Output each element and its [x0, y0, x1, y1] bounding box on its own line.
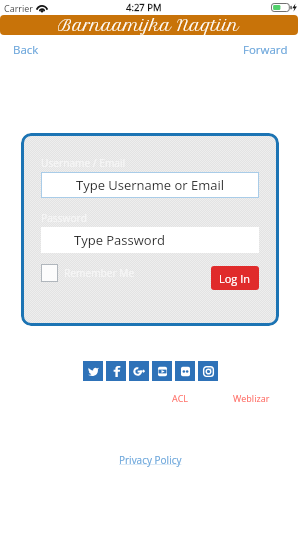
staticText: Type Password: [74, 231, 165, 249]
staticText: Remember Me: [64, 266, 135, 280]
button[interactable]: Back: [13, 42, 39, 56]
button[interactable]: YouTube: [152, 361, 172, 381]
button[interactable]: Facebook: [106, 361, 126, 381]
button[interactable]: Flickr: [175, 361, 195, 381]
button[interactable]: Instagram: [198, 361, 218, 381]
staticText: 4:27 PM: [126, 1, 162, 14]
staticText: Forward: [243, 42, 288, 56]
staticText: Password: [41, 211, 87, 225]
button[interactable]: Type Password: [41, 227, 259, 253]
staticText: Username / Email: [41, 156, 126, 170]
button[interactable]: Remember Me: [41, 264, 135, 282]
staticText: Privacy Policy: [119, 453, 182, 467]
button[interactable]: Google Plus: [129, 361, 149, 381]
staticText: Back: [13, 42, 39, 56]
button[interactable]: Type Username or Email: [41, 172, 259, 198]
staticText: Barnaamijka Naqtiin: [58, 16, 240, 35]
staticText: Type Username or Email: [76, 176, 225, 194]
staticText: Weblizar: [233, 392, 270, 404]
button[interactable]: Privacy Policy: [119, 453, 182, 467]
staticText: Carrier: [4, 2, 34, 14]
button[interactable]: ACL: [172, 392, 189, 404]
button[interactable]: Twitter: [83, 361, 103, 381]
button[interactable]: Log In: [211, 266, 259, 290]
staticText: Log In: [219, 271, 251, 286]
button[interactable]: Weblizar: [233, 392, 270, 404]
staticText: ACL: [172, 392, 189, 404]
button[interactable]: Forward: [243, 42, 288, 56]
